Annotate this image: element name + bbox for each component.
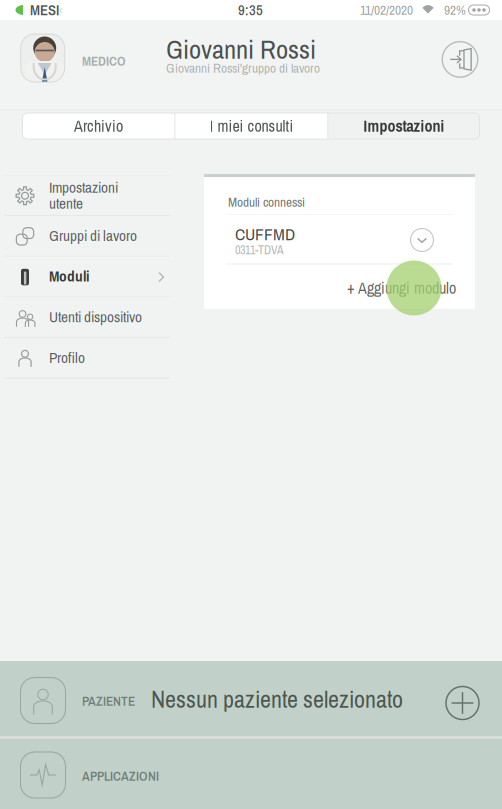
button[interactable]: PAZIENTE bbox=[0, 661, 502, 736]
button[interactable]: Archivio bbox=[22, 113, 174, 139]
button[interactable]: CUFFMD bbox=[204, 215, 475, 264]
staticText: Impostazioni bbox=[49, 177, 118, 198]
staticText: PAZIENTE bbox=[82, 692, 135, 710]
button[interactable]: Esci bbox=[438, 37, 482, 81]
button[interactable]: APPLICAZIONI bbox=[0, 739, 502, 809]
staticText: Profilo bbox=[49, 347, 85, 368]
button[interactable]: Moduli bbox=[0, 0, 174, 809]
button[interactable]: + Aggiungi modulo bbox=[204, 265, 475, 309]
staticText: + Aggiungi modulo bbox=[347, 277, 456, 299]
staticText: Giovanni Rossi bbox=[166, 31, 316, 67]
staticText: APPLICAZIONI bbox=[82, 767, 159, 785]
button[interactable]: Gruppi di lavoro bbox=[0, 0, 174, 809]
staticText: MEDICO bbox=[82, 52, 126, 70]
staticText: MESI bbox=[30, 0, 59, 20]
button[interactable]: Impostazioni bbox=[328, 113, 479, 139]
button[interactable]: Impostazioni bbox=[0, 0, 174, 809]
staticText: Impostazioni bbox=[363, 115, 444, 137]
staticText: I miei consulti bbox=[209, 115, 293, 137]
staticText: Moduli bbox=[49, 266, 89, 286]
staticText: utente bbox=[49, 193, 83, 214]
staticText: 92% bbox=[444, 1, 466, 19]
button[interactable]: I miei consulti bbox=[175, 113, 327, 139]
staticText: 0311-TDVA bbox=[235, 242, 284, 258]
staticText: Giovanni Rossi'gruppo di lavoro bbox=[166, 59, 320, 77]
staticText: Gruppi di lavoro bbox=[49, 225, 137, 246]
button[interactable]: Utenti dispositivo bbox=[0, 0, 174, 809]
staticText: CUFFMD bbox=[235, 222, 295, 246]
staticText: 11/02/2020 bbox=[360, 1, 413, 19]
staticText: Utenti dispositivo bbox=[49, 306, 142, 327]
staticText: Moduli connessi bbox=[228, 193, 305, 211]
button[interactable]: Profilo bbox=[0, 0, 174, 809]
staticText: ‹ bbox=[59, 1, 63, 19]
staticText: Nessun paziente selezionato bbox=[151, 683, 403, 715]
staticText: 9:35 bbox=[238, 0, 263, 20]
staticText: Archivio bbox=[74, 115, 123, 137]
